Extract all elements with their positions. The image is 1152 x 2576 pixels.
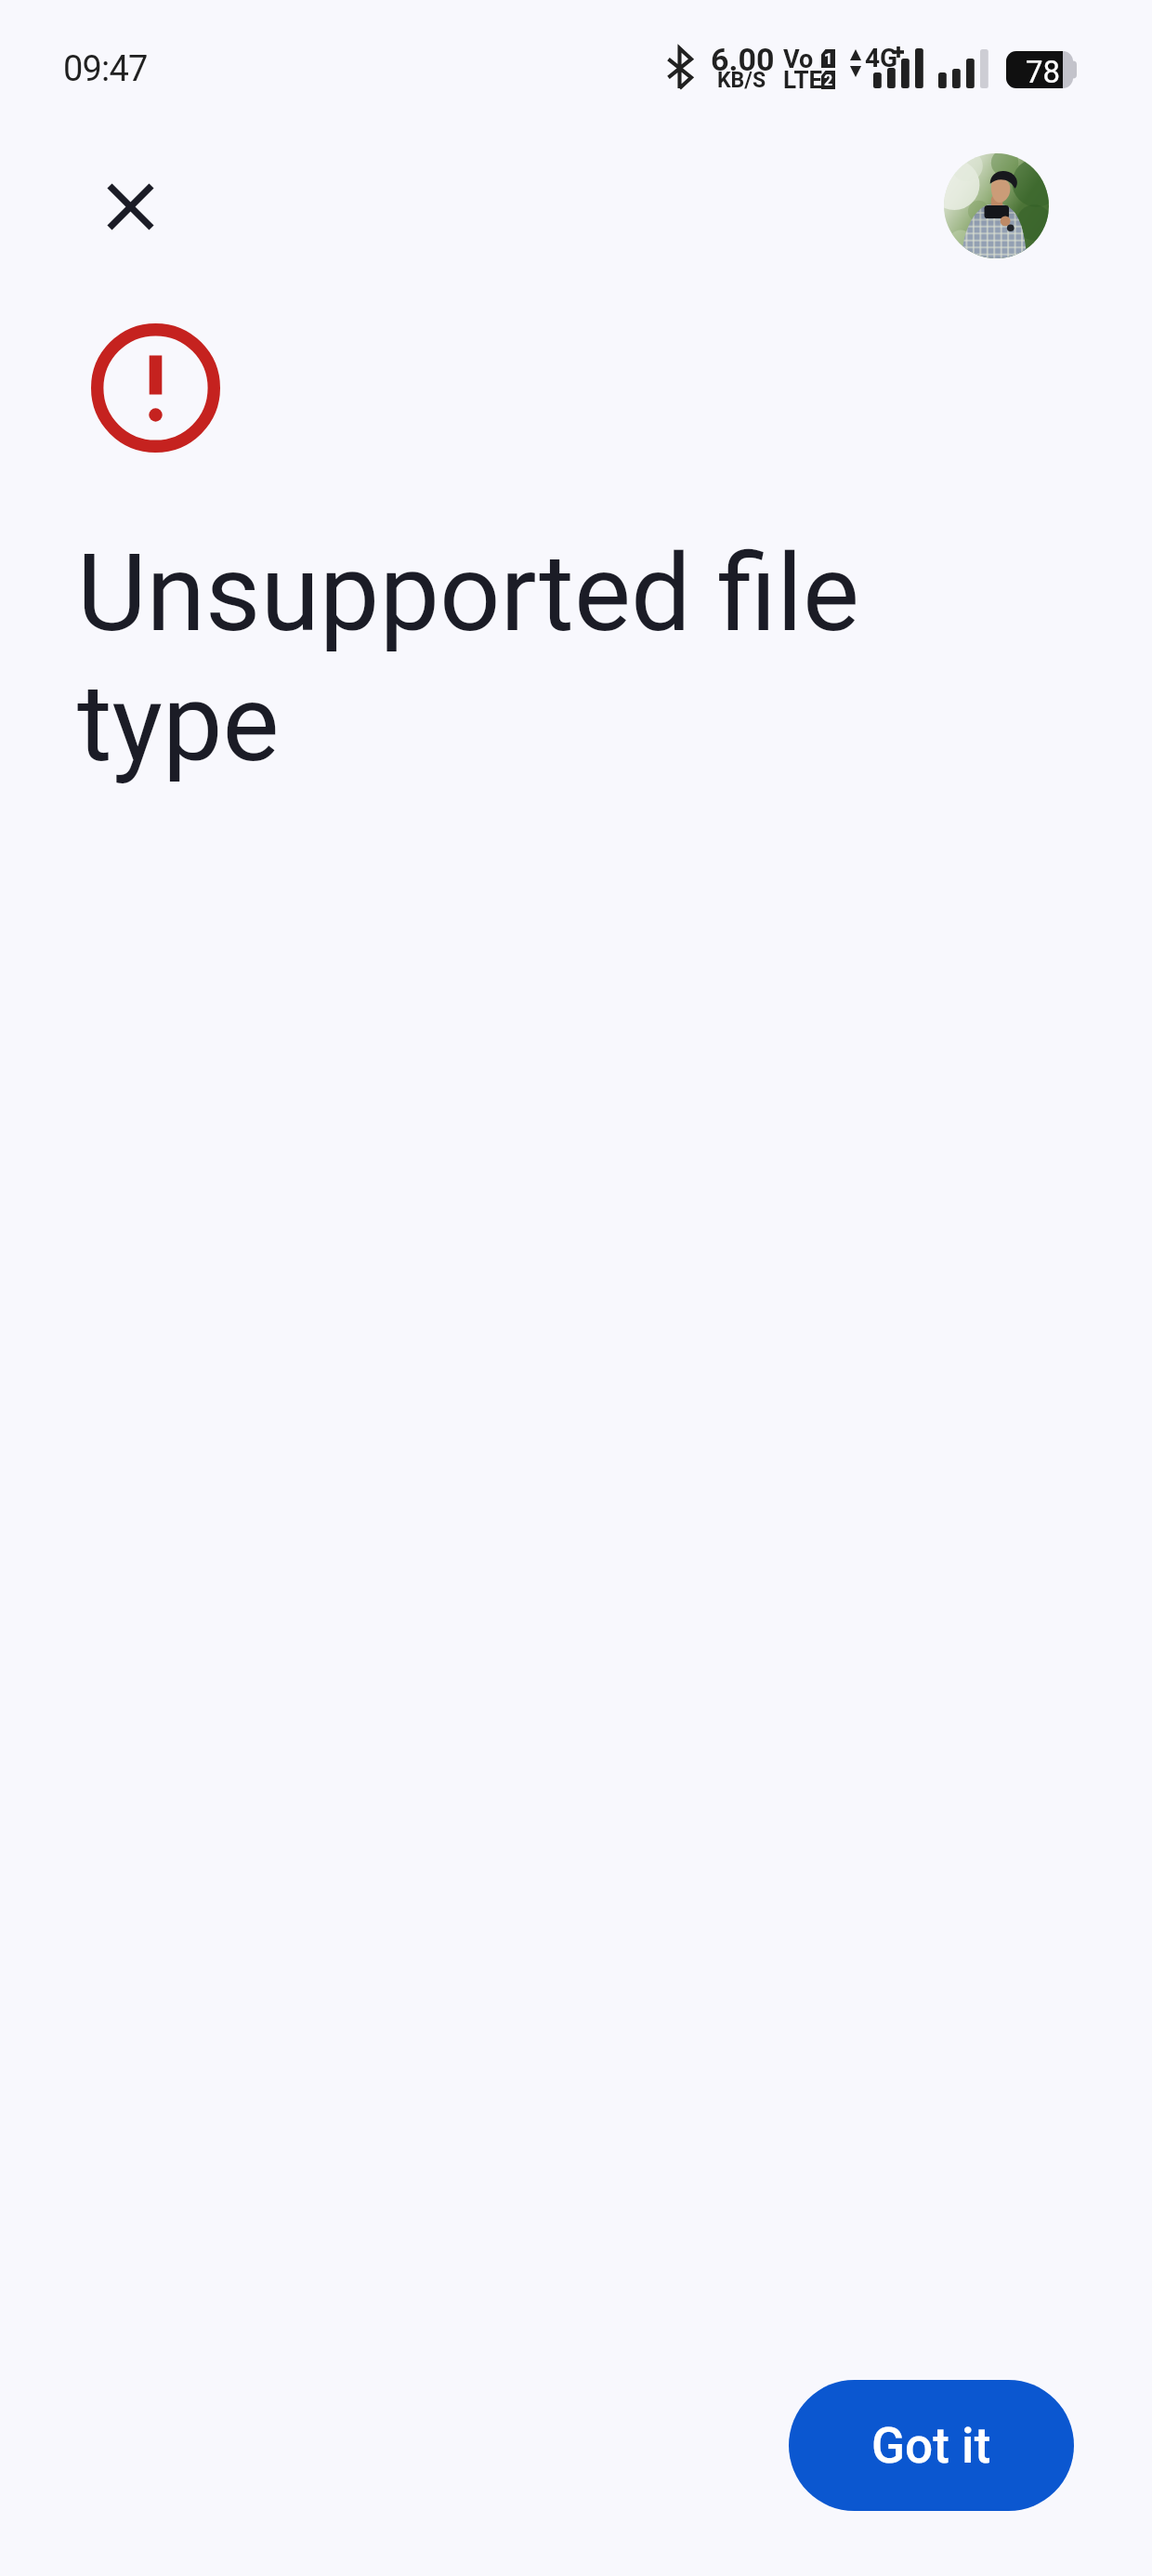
- staticText: 4G: [865, 43, 898, 73]
- staticText: KB/S: [717, 68, 766, 93]
- staticText: Vo: [783, 45, 814, 74]
- button[interactable]: Got it: [789, 2380, 1074, 2511]
- staticText: Unsupported file type: [77, 531, 860, 786]
- staticText: 09:47: [63, 48, 148, 90]
- staticText: Got it: [871, 2417, 991, 2475]
- button[interactable]: Account: [944, 153, 1049, 258]
- staticText: 1: [824, 50, 833, 68]
- staticText: 6.00: [711, 41, 775, 78]
- staticText: 2: [824, 72, 833, 89]
- button[interactable]: Close: [63, 139, 197, 273]
- staticText: 78: [1026, 54, 1061, 90]
- staticText: LTE: [783, 66, 823, 94]
